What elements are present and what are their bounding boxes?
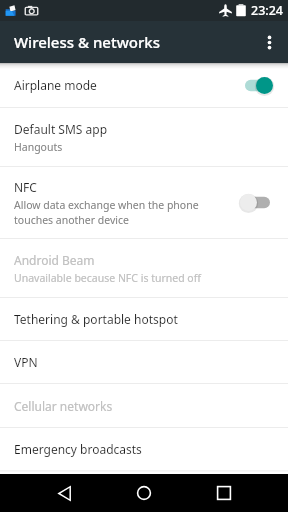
button[interactable]: Android Beam bbox=[0, 239, 288, 297]
staticText: NFC bbox=[14, 179, 37, 195]
button[interactable]: Recent apps bbox=[184, 474, 264, 512]
button[interactable]: Tethering & portable hotspot bbox=[0, 298, 288, 340]
staticText: Android Beam bbox=[14, 252, 95, 268]
staticText: Tethering & portable hotspot bbox=[14, 311, 178, 327]
staticText: Wireless & networks bbox=[14, 32, 160, 52]
staticText: VPN bbox=[14, 354, 38, 370]
button[interactable]: Cellular networks bbox=[0, 384, 288, 427]
button[interactable]: Airplane mode bbox=[0, 63, 288, 107]
button[interactable]: Home bbox=[104, 474, 184, 512]
staticText: Cellular networks bbox=[14, 398, 113, 414]
staticText: Airplane mode bbox=[14, 77, 97, 93]
button[interactable]: VPN bbox=[0, 341, 288, 383]
button[interactable]: Default SMS app bbox=[0, 108, 288, 166]
staticText: Allow data exchange when the phone bbox=[14, 198, 199, 212]
button[interactable]: More options bbox=[250, 23, 288, 61]
staticText: Default SMS app bbox=[14, 121, 108, 137]
staticText: 23:24 bbox=[251, 2, 284, 19]
button[interactable]: NFC bbox=[0, 167, 288, 238]
button[interactable]: Emergency broadcasts bbox=[0, 428, 288, 470]
staticText: touches another device bbox=[14, 213, 130, 227]
staticText: Emergency broadcasts bbox=[14, 441, 142, 457]
button[interactable]: Back bbox=[24, 474, 104, 512]
staticText: Unavailable because NFC is turned off bbox=[14, 271, 201, 285]
staticText: Hangouts bbox=[14, 140, 63, 154]
